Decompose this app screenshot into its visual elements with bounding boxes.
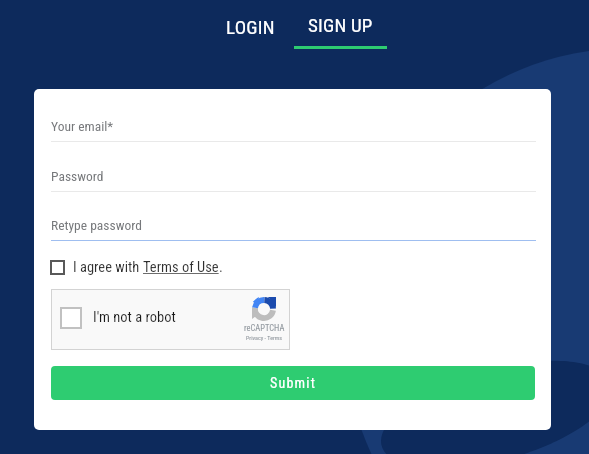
button[interactable]: I'm not a robot <box>51 289 290 350</box>
staticText: LOGIN <box>226 16 275 38</box>
button[interactable]: Submit <box>51 366 535 400</box>
staticText: Your email* <box>51 118 114 134</box>
staticText: I'm not a robot <box>93 309 176 326</box>
staticText: reCAPTCHA <box>244 323 285 333</box>
staticText: SIGN UP <box>308 14 373 36</box>
staticText: Submit <box>270 375 317 391</box>
button[interactable]: SIGN UP <box>293 10 388 49</box>
button[interactable]: I agree with <box>50 259 223 276</box>
staticText: . <box>219 259 223 276</box>
staticText: I agree with <box>73 259 143 276</box>
staticText: Terms of Use <box>143 259 219 276</box>
staticText: Password <box>51 168 104 184</box>
staticText: Privacy - Terms <box>246 334 283 341</box>
button[interactable]: LOGIN <box>214 10 286 44</box>
staticText: Retype password <box>51 217 142 233</box>
